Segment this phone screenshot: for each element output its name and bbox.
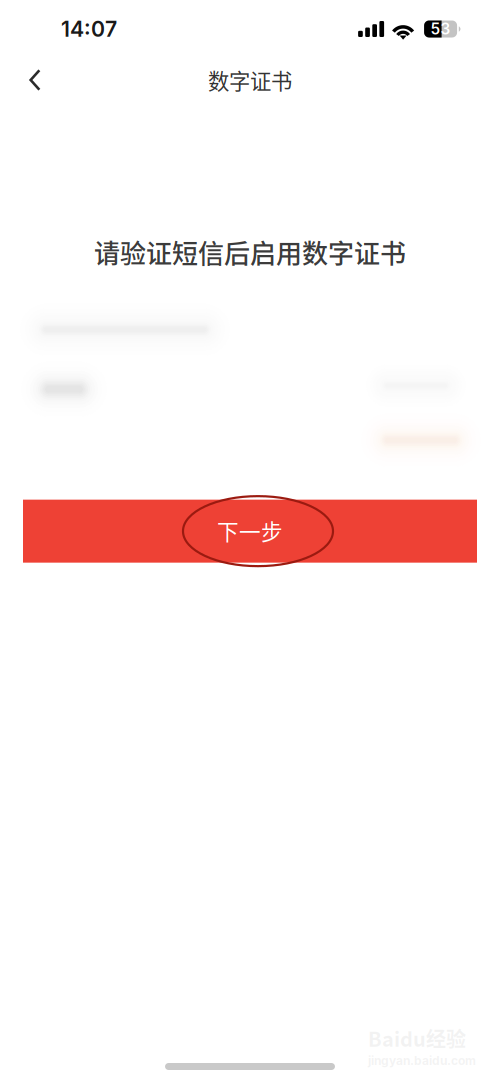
staticText: 数字证书: [208, 65, 292, 95]
staticText: 53: [431, 20, 451, 38]
button[interactable]: 下一步: [23, 500, 477, 563]
staticText: 下一步: [217, 515, 283, 546]
button[interactable]: Back: [13, 58, 57, 102]
staticText: jingyan.baidu.com: [368, 1053, 476, 1068]
staticText: 请验证短信后启用数字证书: [94, 233, 406, 271]
staticText: 14:07: [61, 16, 117, 42]
staticText: Baidu经验: [368, 1023, 466, 1052]
